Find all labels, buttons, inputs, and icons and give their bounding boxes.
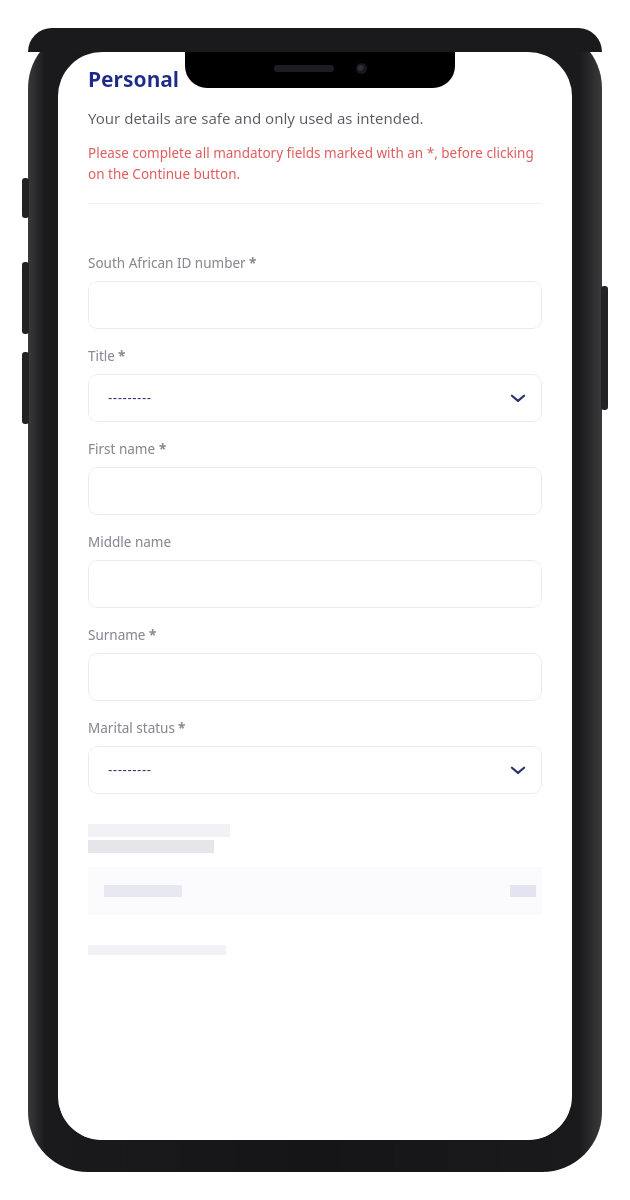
staticText: * xyxy=(159,440,167,458)
button[interactable]: --------- xyxy=(88,746,542,794)
button[interactable] xyxy=(88,281,542,329)
staticText: First name xyxy=(88,440,156,458)
staticText: South African ID number xyxy=(88,254,246,272)
button[interactable] xyxy=(88,653,542,701)
staticText: Your details are safe and only used as i… xyxy=(88,108,424,128)
staticText: --------- xyxy=(108,761,152,779)
button[interactable] xyxy=(88,560,542,608)
staticText: Marital status xyxy=(88,719,175,737)
button[interactable] xyxy=(88,467,542,515)
staticText: * xyxy=(249,254,257,272)
staticText: Surname xyxy=(88,626,146,644)
other: Open dropdown xyxy=(510,390,526,406)
staticText: --------- xyxy=(108,389,152,407)
staticText: Middle name xyxy=(88,533,172,551)
button[interactable]: --------- xyxy=(88,374,542,422)
staticText: Personal xyxy=(88,65,180,94)
staticText: * xyxy=(178,719,186,737)
staticText: Please complete all mandatory fields mar… xyxy=(88,144,542,183)
other: Open dropdown xyxy=(510,762,526,778)
staticText: * xyxy=(149,626,157,644)
staticText: Title xyxy=(88,347,115,365)
staticText: * xyxy=(118,347,126,365)
